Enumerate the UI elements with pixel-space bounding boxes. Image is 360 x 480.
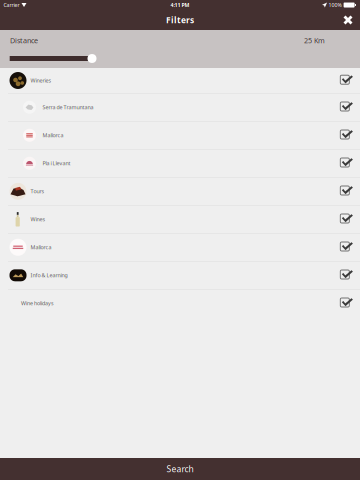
button[interactable]: Serra de Tramuntana: [0, 94, 360, 121]
staticText: Info & Learning: [30, 272, 67, 279]
staticText: Pla i Llevant: [42, 160, 70, 167]
staticText: Search: [166, 463, 193, 475]
staticText: 25 Km: [304, 35, 325, 45]
staticText: Wine holidays: [21, 300, 54, 307]
button[interactable]: Wines: [0, 206, 360, 233]
button[interactable]: Search: [0, 458, 360, 480]
staticText: 100%: [329, 1, 342, 9]
staticText: Carrier: [3, 1, 19, 9]
staticText: Tours: [30, 188, 44, 195]
staticText: Wineries: [30, 77, 51, 84]
button[interactable]: Mallorca: [0, 122, 360, 149]
button[interactable]: Close: [336, 10, 360, 30]
button[interactable]: Wine holidays: [0, 290, 360, 317]
button[interactable]: Mallorca: [0, 234, 360, 261]
button[interactable]: Tours: [0, 178, 360, 205]
button[interactable]: Wineries: [0, 68, 360, 93]
staticText: Mallorca: [30, 244, 51, 251]
staticText: 4:11 PM: [170, 1, 189, 9]
button[interactable]: Pla i Llevant: [0, 150, 360, 177]
staticText: Mallorca: [42, 132, 63, 139]
button[interactable]: Info & Learning: [0, 262, 360, 289]
staticText: Distance: [10, 35, 38, 45]
staticText: Wines: [30, 216, 45, 223]
staticText: Filters: [166, 14, 194, 26]
staticText: Serra de Tramuntana: [42, 104, 93, 111]
